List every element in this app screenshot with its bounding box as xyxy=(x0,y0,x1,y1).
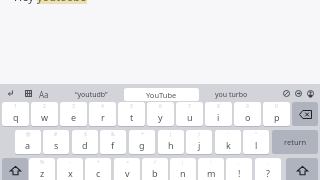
staticText: @ xyxy=(26,131,31,138)
staticText: u xyxy=(187,111,193,123)
button[interactable]: 6 xyxy=(147,102,174,126)
button[interactable]: . xyxy=(255,158,281,180)
staticText: 3 xyxy=(72,103,75,110)
staticText: # xyxy=(54,131,58,138)
button[interactable]: Insert xyxy=(295,90,302,97)
staticText: ( xyxy=(170,131,172,138)
staticText: 6 xyxy=(159,103,162,110)
staticText: youtoobe xyxy=(37,0,87,4)
button[interactable]: - xyxy=(57,158,83,180)
staticText: $ xyxy=(84,131,87,138)
button[interactable]: = xyxy=(114,158,140,180)
button[interactable]: * xyxy=(129,130,155,154)
staticText: “youtudb” xyxy=(75,90,108,100)
staticText: YouTube xyxy=(146,90,177,100)
button[interactable]: 0 xyxy=(263,102,290,126)
staticText: 8 xyxy=(217,103,220,110)
button[interactable]: " xyxy=(243,130,269,154)
button[interactable]: Return xyxy=(272,130,318,154)
staticText: q xyxy=(13,111,19,123)
button[interactable]: & xyxy=(100,130,126,154)
staticText: return xyxy=(284,137,307,147)
staticText: = xyxy=(126,159,129,166)
button[interactable]: Shift xyxy=(2,158,28,180)
button[interactable]: Aa xyxy=(39,89,49,100)
staticText: h xyxy=(168,139,174,151)
staticText: 4 xyxy=(101,103,104,110)
button[interactable]: Backspace xyxy=(292,102,318,126)
button[interactable]: 3 xyxy=(60,102,87,126)
staticText: & xyxy=(111,131,115,138)
staticText: n xyxy=(180,167,186,179)
staticText: o xyxy=(245,111,251,123)
staticText: x xyxy=(68,167,73,179)
button[interactable]: Keyboard layout xyxy=(25,90,32,97)
button[interactable]: ) xyxy=(186,130,212,154)
staticText: t xyxy=(130,111,134,123)
button[interactable]: “youtudb” xyxy=(60,88,122,101)
button[interactable]: : xyxy=(198,158,224,180)
button[interactable]: 5 xyxy=(118,102,145,126)
staticText: % xyxy=(40,159,45,166)
staticText: - xyxy=(69,159,71,166)
staticText: 1 xyxy=(14,103,17,110)
button[interactable]: ; xyxy=(170,158,196,180)
button[interactable]: you turbo xyxy=(200,88,262,101)
staticText: r xyxy=(101,111,105,123)
staticText: b xyxy=(152,167,158,179)
staticText: . xyxy=(267,159,269,166)
button[interactable]: % xyxy=(29,158,55,180)
staticText: l xyxy=(255,139,258,151)
button[interactable]: YouTube xyxy=(124,88,199,101)
staticText: you turbo xyxy=(215,90,248,100)
staticText: 7 xyxy=(188,103,191,110)
button[interactable]: , xyxy=(226,158,252,180)
staticText: k xyxy=(226,139,231,151)
staticText: 2 xyxy=(43,103,46,110)
staticText: ? xyxy=(266,167,270,179)
staticText: g xyxy=(139,139,145,151)
staticText: ) xyxy=(198,131,200,138)
staticText: 0 xyxy=(275,103,278,110)
button[interactable]: Shift xyxy=(286,158,318,180)
staticText: * xyxy=(141,131,144,138)
staticText: s xyxy=(54,139,59,151)
button[interactable]: 9 xyxy=(234,102,261,126)
staticText: " xyxy=(255,131,258,138)
staticText: 9 xyxy=(246,103,249,110)
button[interactable]: 8 xyxy=(205,102,232,126)
staticText: y xyxy=(158,111,163,123)
staticText: ! xyxy=(238,167,241,179)
staticText: d xyxy=(82,139,88,151)
button[interactable]: Undo xyxy=(8,89,16,97)
staticText: / xyxy=(154,159,156,166)
staticText: a xyxy=(25,139,31,151)
staticText: z xyxy=(40,167,45,179)
button[interactable]: 7 xyxy=(176,102,203,126)
button[interactable]: ' xyxy=(215,130,241,154)
button[interactable]: + xyxy=(85,158,111,180)
staticText: f xyxy=(111,139,115,151)
staticText: j xyxy=(198,139,201,151)
staticText: m xyxy=(207,167,216,179)
staticText: ; xyxy=(182,159,184,166)
button[interactable]: 1 xyxy=(2,102,29,126)
button[interactable]: # xyxy=(43,130,69,154)
staticText: w xyxy=(41,111,49,123)
staticText: 5 xyxy=(130,103,133,110)
staticText: c xyxy=(96,167,101,179)
staticText: : xyxy=(210,159,212,166)
staticText: , xyxy=(238,159,240,166)
button[interactable]: 2 xyxy=(31,102,58,126)
staticText: p xyxy=(274,111,280,123)
button[interactable]: / xyxy=(142,158,168,180)
staticText: + xyxy=(97,159,100,166)
button[interactable]: @ xyxy=(15,130,41,154)
button[interactable]: Format xyxy=(283,90,290,97)
staticText: Hey xyxy=(14,0,37,4)
button[interactable]: ( xyxy=(158,130,184,154)
staticText: i xyxy=(217,111,220,123)
button[interactable]: 4 xyxy=(89,102,116,126)
button[interactable]: Account xyxy=(307,90,314,97)
button[interactable]: $ xyxy=(72,130,98,154)
